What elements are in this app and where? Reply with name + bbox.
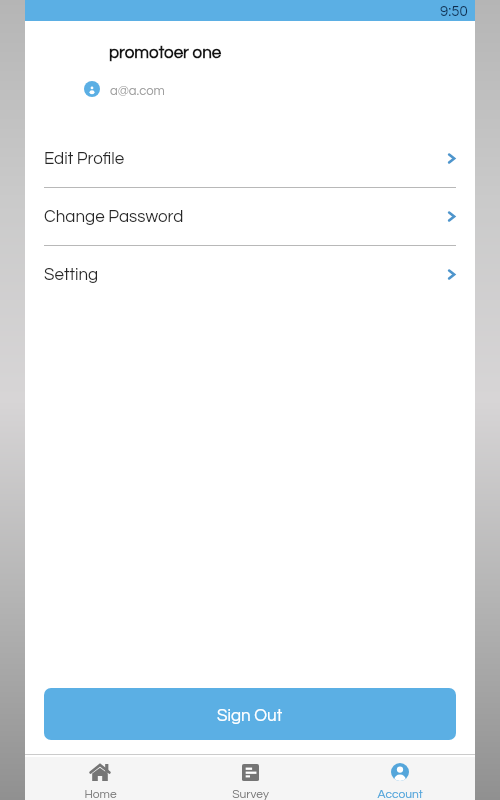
other: Change Password — [448, 211, 455, 222]
staticText: Survey — [232, 788, 269, 800]
button[interactable]: Sign Out — [44, 688, 456, 740]
staticText: Sign Out — [217, 707, 283, 725]
button[interactable]: Account — [325, 757, 475, 800]
other: Setting — [448, 269, 455, 280]
staticText: Home — [84, 788, 117, 800]
staticText: Change Password — [44, 208, 184, 226]
staticText: Setting — [44, 266, 99, 284]
staticText: Account — [377, 788, 423, 800]
staticText: promotoer one — [109, 44, 222, 62]
staticText: 9:50 — [440, 4, 468, 19]
staticText: Edit Profile — [44, 150, 125, 168]
button[interactable]: Home — [25, 757, 175, 800]
button[interactable]: Change Password — [25, 188, 475, 245]
button[interactable]: Survey — [175, 757, 325, 800]
button[interactable]: Edit Profile — [25, 130, 475, 187]
staticText: a@a.com — [110, 84, 165, 97]
button[interactable]: Setting — [25, 246, 475, 303]
other: Edit Profile — [448, 153, 455, 164]
